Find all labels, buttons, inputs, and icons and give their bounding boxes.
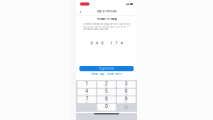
staticText: ABC [105,86,108,88]
staticText: Introducir el código [96,18,116,20]
staticText: JKL [105,94,108,95]
staticText: 4 [121,41,123,45]
button[interactable]: 6 [117,89,136,95]
button[interactable]: 2 [97,81,116,88]
staticText: WXYZ [124,101,128,103]
staticText: Siguiente [99,67,114,70]
button[interactable]: Back [78,8,83,14]
button[interactable]: 7 [77,96,96,103]
staticText: 8 [105,96,108,101]
button[interactable]: 3 [117,81,136,88]
button[interactable]: 9 [117,96,136,103]
staticText: DEF [125,86,128,88]
staticText: Código de confirmación [96,10,116,13]
staticText: 9 [125,96,128,101]
staticText: 2 [105,81,108,86]
staticText: 7 [86,96,88,101]
staticText: 0 [90,41,92,45]
staticText: TUV [105,101,108,103]
staticText: 6 [125,89,128,94]
staticText: PQRS [85,101,89,103]
staticText: 3 [125,81,128,86]
button[interactable]: Siguiente [79,66,134,71]
staticText: 4 [85,89,88,94]
staticText: 0 [105,104,108,109]
staticText: ▮▮▮ [126,3,129,5]
button[interactable]: Reenviar código · Cambiar número [91,73,122,75]
button[interactable]: 1 [77,81,96,88]
button[interactable]: 5 [97,89,116,95]
button[interactable]: 4 [77,89,96,95]
staticText: 1 [110,41,111,45]
staticText: 5 [105,89,108,94]
staticText: Reenviar código · Cambiar número [91,73,122,75]
staticText: 7 [115,41,117,45]
staticText: ‹ [79,9,81,14]
staticText: Te hemos enviado un código de verificaci… [82,23,130,30]
staticText: 9 [101,41,103,45]
staticText: 4 [96,41,98,45]
button[interactable]: 8 [97,96,116,103]
button[interactable]: Delete [117,104,136,111]
staticText: 1 [86,81,88,86]
staticText: MNO [125,94,128,95]
button[interactable]: 0 [97,104,116,111]
